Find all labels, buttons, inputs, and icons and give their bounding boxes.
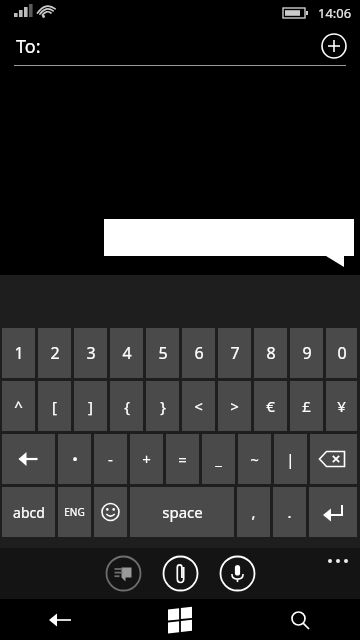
staticText: 7 bbox=[230, 342, 240, 364]
button[interactable]: 4 bbox=[110, 328, 143, 378]
staticText: 6 bbox=[194, 342, 204, 364]
staticText: . bbox=[287, 502, 292, 522]
button[interactable]: space bbox=[130, 487, 234, 537]
button[interactable]: Emoji bbox=[94, 487, 127, 537]
staticText: • bbox=[72, 449, 78, 469]
button[interactable]: ¥ bbox=[326, 381, 357, 431]
button[interactable]: < bbox=[182, 381, 215, 431]
button[interactable]: ENG bbox=[58, 487, 91, 537]
button[interactable]: Voice input bbox=[219, 555, 256, 592]
button[interactable]: 6 bbox=[182, 328, 215, 378]
button[interactable]: 2 bbox=[38, 328, 71, 378]
button[interactable]: 0 bbox=[326, 328, 357, 378]
button[interactable]: | bbox=[274, 434, 307, 484]
button[interactable]: } bbox=[146, 381, 179, 431]
button[interactable]: • bbox=[58, 434, 91, 484]
staticText: ¥ bbox=[337, 396, 346, 416]
staticText: 4 bbox=[122, 342, 132, 364]
staticText: 14:06 bbox=[318, 4, 352, 22]
staticText: [ bbox=[52, 396, 57, 416]
staticText: = bbox=[178, 449, 187, 469]
staticText: ~ bbox=[250, 449, 259, 469]
button[interactable]: Backspace bbox=[310, 434, 357, 484]
staticText: - bbox=[108, 449, 113, 469]
staticText: } bbox=[160, 396, 166, 416]
staticText: 8 bbox=[266, 342, 276, 364]
staticText: ^ bbox=[14, 396, 23, 416]
staticText: abcd bbox=[13, 503, 45, 522]
button[interactable]: 7 bbox=[218, 328, 251, 378]
button[interactable]: Back bbox=[30, 601, 90, 639]
button[interactable]: To: bbox=[0, 26, 360, 66]
button[interactable]: ^ bbox=[2, 381, 35, 431]
button[interactable]: _ bbox=[202, 434, 235, 484]
button[interactable]: Attach bbox=[162, 555, 199, 592]
staticText: | bbox=[286, 449, 295, 469]
staticText: 5 bbox=[158, 342, 168, 364]
button[interactable]: = bbox=[166, 434, 199, 484]
button[interactable]: Previous page bbox=[2, 434, 55, 484]
button[interactable]: 1 bbox=[2, 328, 35, 378]
button[interactable]: Send bbox=[105, 555, 142, 592]
button[interactable]: £ bbox=[290, 381, 323, 431]
staticText: To: bbox=[16, 34, 41, 59]
staticText: > bbox=[230, 396, 239, 416]
staticText: < bbox=[194, 396, 203, 416]
staticText: 2 bbox=[50, 342, 60, 364]
button[interactable]: ] bbox=[74, 381, 107, 431]
button[interactable]: ~ bbox=[238, 434, 271, 484]
button[interactable]: + bbox=[130, 434, 163, 484]
button[interactable]: Start bbox=[150, 601, 210, 639]
button[interactable]: [ bbox=[38, 381, 71, 431]
button[interactable]: Search bbox=[270, 601, 330, 639]
button[interactable]: abcd bbox=[2, 487, 55, 537]
button[interactable]: 5 bbox=[146, 328, 179, 378]
button[interactable]: More options bbox=[316, 548, 360, 574]
staticText: { bbox=[124, 396, 130, 416]
button[interactable]: . bbox=[273, 487, 306, 537]
staticText: ] bbox=[88, 396, 93, 416]
button[interactable]: Enter bbox=[309, 487, 357, 537]
button[interactable]: { bbox=[110, 381, 143, 431]
staticText: , bbox=[251, 502, 256, 522]
button[interactable]: 3 bbox=[74, 328, 107, 378]
staticText: _ bbox=[215, 449, 222, 469]
staticText: + bbox=[142, 449, 151, 469]
button[interactable]: , bbox=[237, 487, 270, 537]
button[interactable]: 8 bbox=[254, 328, 287, 378]
button[interactable]: 9 bbox=[290, 328, 323, 378]
button[interactable]: - bbox=[94, 434, 127, 484]
staticText: 9 bbox=[302, 342, 312, 364]
staticText: £ bbox=[302, 396, 311, 416]
button[interactable]: Add contact bbox=[320, 32, 348, 60]
staticText: € bbox=[266, 396, 275, 416]
button[interactable]: > bbox=[218, 381, 251, 431]
staticText: 0 bbox=[337, 342, 347, 364]
staticText: ENG bbox=[64, 505, 85, 519]
button[interactable]: € bbox=[254, 381, 287, 431]
staticText: 3 bbox=[86, 342, 96, 364]
staticText: space bbox=[162, 502, 203, 522]
staticText: 1 bbox=[14, 342, 24, 364]
